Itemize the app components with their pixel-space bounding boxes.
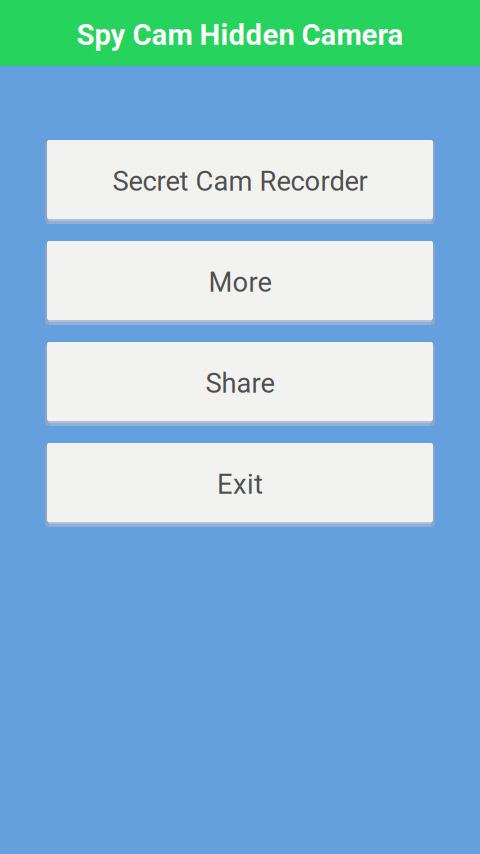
staticText: Spy Cam Hidden Camera xyxy=(76,18,403,52)
button[interactable]: Share xyxy=(47,342,433,421)
button[interactable]: More xyxy=(47,241,433,320)
staticText: Secret Cam Recorder xyxy=(112,165,367,197)
button[interactable]: Exit xyxy=(47,443,433,522)
staticText: Share xyxy=(205,367,274,399)
staticText: More xyxy=(208,266,271,298)
staticText: Exit xyxy=(217,468,263,500)
button[interactable]: Secret Cam Recorder xyxy=(47,140,433,219)
